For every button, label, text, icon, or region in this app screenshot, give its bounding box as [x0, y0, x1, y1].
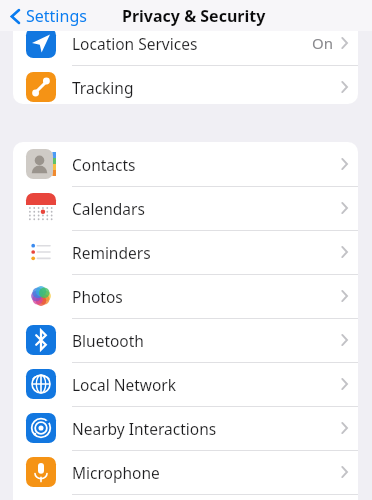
- button[interactable]: Location Services: [13, 21, 358, 65]
- button[interactable]: Tracking: [13, 65, 358, 104]
- button[interactable]: Reminders: [13, 230, 358, 274]
- staticText: Microphone: [72, 462, 160, 483]
- staticText: Settings: [26, 5, 87, 27]
- staticText: Calendars: [72, 198, 145, 219]
- staticText: On: [312, 33, 333, 53]
- staticText: Contacts: [72, 154, 136, 175]
- button[interactable]: Nearby Interactions: [13, 406, 358, 450]
- button[interactable]: Microphone: [13, 450, 358, 494]
- button[interactable]: Calendars: [13, 186, 358, 230]
- staticText: Local Network: [72, 374, 177, 395]
- button[interactable]: Photos: [13, 274, 358, 318]
- staticText: Bluetooth: [72, 330, 144, 351]
- staticText: Tracking: [72, 77, 134, 98]
- staticText: Photos: [72, 286, 123, 307]
- staticText: Privacy & Security: [122, 5, 266, 27]
- staticText: Reminders: [72, 242, 151, 263]
- staticText: Location Services: [72, 33, 198, 54]
- button[interactable]: Contacts: [13, 142, 358, 186]
- button[interactable]: Settings: [6, 2, 91, 30]
- button[interactable]: Local Network: [13, 362, 358, 406]
- staticText: Nearby Interactions: [72, 418, 217, 439]
- button[interactable]: Bluetooth: [13, 318, 358, 362]
